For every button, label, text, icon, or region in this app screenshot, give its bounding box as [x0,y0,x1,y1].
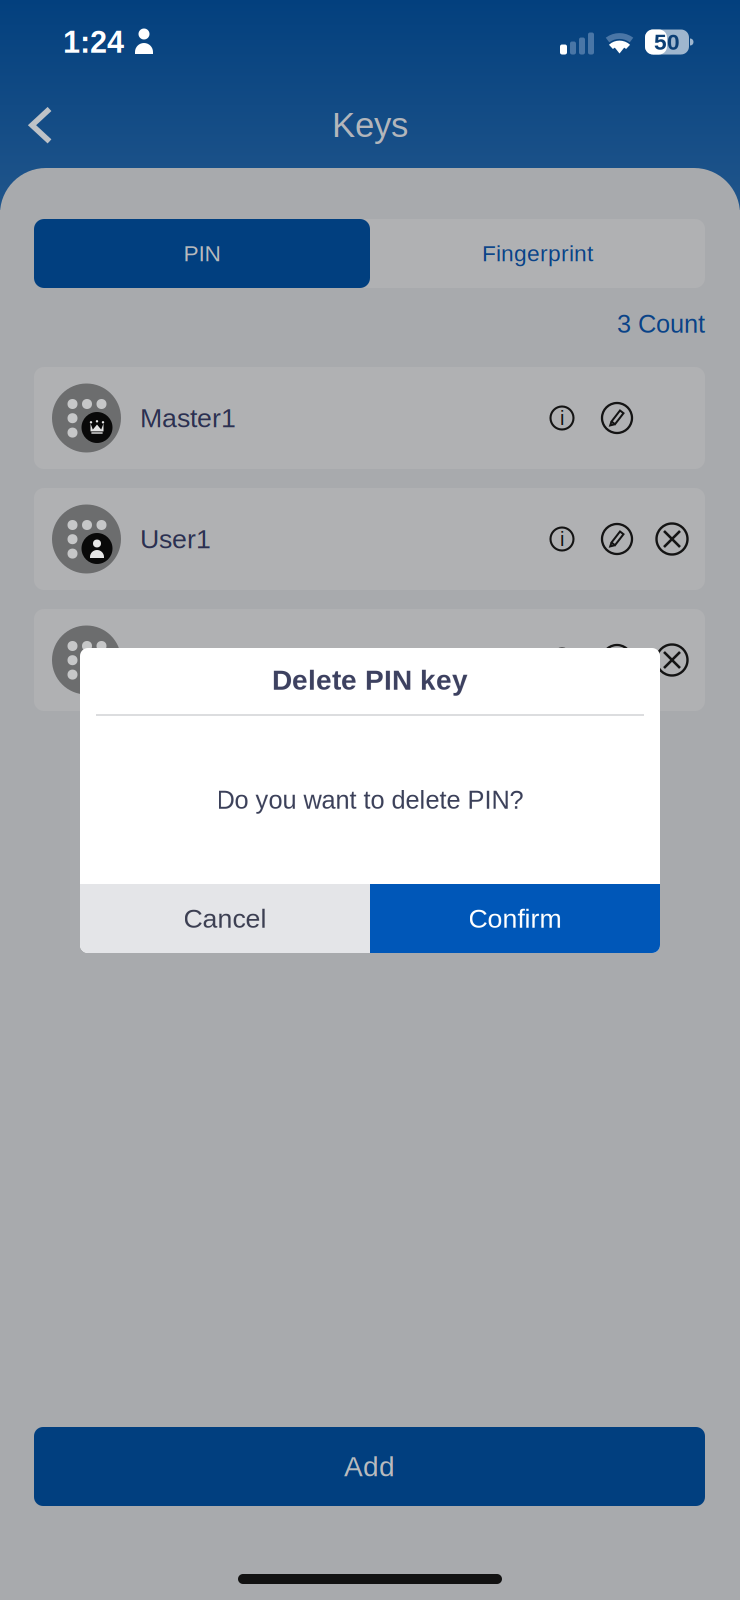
staticText: Keys [332,106,408,144]
staticText: Cancel [183,904,266,933]
button[interactable]: Key info [545,522,579,556]
button[interactable]: PIN [34,219,370,288]
staticText: i [560,407,564,429]
staticText: Fingerprint [482,241,593,266]
button[interactable]: Add [34,1427,705,1506]
button[interactable]: Edit key [600,522,634,556]
button[interactable]: Edit key [600,643,634,677]
staticText: Do you want to delete PIN? [216,786,523,814]
staticText: Delete PIN key [272,664,468,696]
staticText: Master1 [140,403,236,433]
button[interactable]: Key info [545,643,579,677]
staticText: User2 [140,645,211,675]
button[interactable]: Back [0,86,73,164]
button[interactable]: Cancel [80,884,370,953]
staticText: 3 Count [617,310,705,338]
button[interactable]: Fingerprint [370,219,705,288]
staticText: Confirm [468,904,561,933]
staticText: User1 [140,524,211,554]
button[interactable]: Key info [545,401,579,435]
staticText: 1:24 [63,25,124,59]
staticText: Add [344,1451,395,1482]
button[interactable]: Confirm [370,884,660,953]
button[interactable]: Delete key [655,522,689,556]
staticText: PIN [183,241,220,266]
button[interactable]: Edit key [600,401,634,435]
staticText: 50 [654,29,680,55]
button[interactable]: Delete key [655,643,689,677]
staticText: i [560,528,564,550]
